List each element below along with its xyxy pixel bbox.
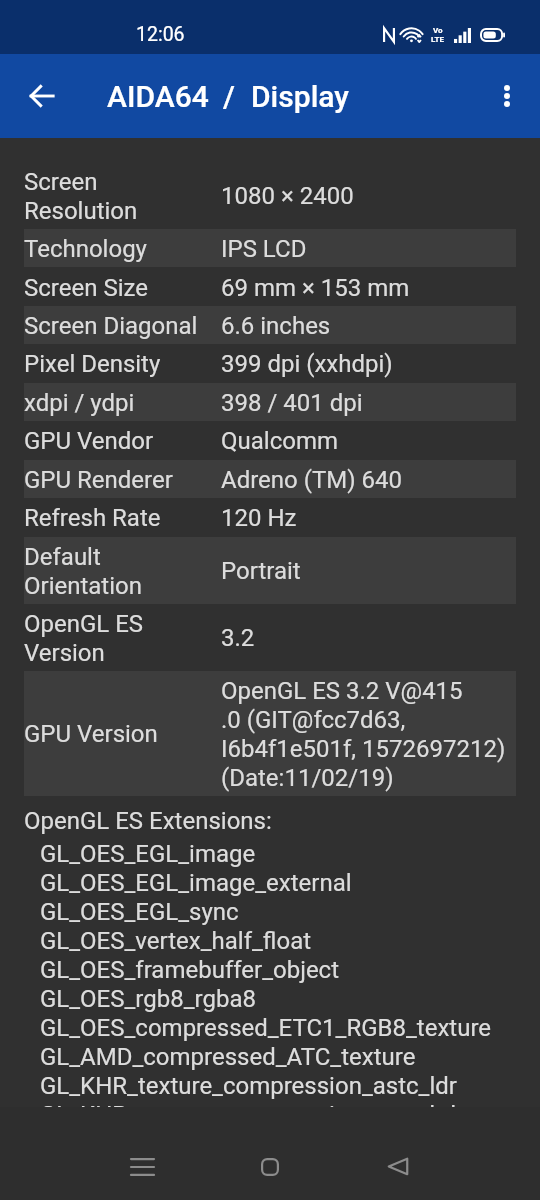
staticText: Vo (433, 26, 443, 35)
staticText: GPU Renderer (24, 465, 221, 494)
staticText: 120 Hz (221, 503, 297, 532)
staticText: Screen Size (24, 273, 221, 302)
button[interactable]: Recent apps (78, 1107, 206, 1200)
staticText: Screen Resolution (24, 167, 221, 225)
staticText: Display (251, 79, 349, 114)
staticText: Refresh Rate (24, 503, 221, 532)
staticText: OpenGL ES 3.2 V@415 .0 (GIT@fcc7d63, I6b… (221, 676, 506, 792)
staticText: AIDA64 (107, 79, 209, 114)
button[interactable]: Home (206, 1107, 334, 1200)
staticText: Screen Diagonal (24, 311, 221, 340)
button[interactable]: OpenGL ES Version (24, 604, 516, 671)
staticText: Portrait (221, 556, 301, 585)
button[interactable]: GPU Version (24, 671, 516, 796)
staticText: 12:06 (136, 23, 185, 46)
staticText: / (223, 79, 235, 114)
button[interactable]: GPU Renderer (24, 460, 516, 498)
staticText: Pixel Density (24, 349, 221, 378)
staticText: GPU Version (24, 719, 221, 748)
button[interactable]: Technology (24, 229, 516, 267)
staticText: GL_OES_EGL_image GL_OES_EGL_image_extern… (40, 839, 532, 1107)
staticText: GPU Vendor (24, 426, 221, 455)
staticText: Default Orientation (24, 542, 221, 600)
button[interactable]: xdpi / ydpi (24, 383, 516, 421)
staticText: 3.2 (221, 623, 255, 652)
staticText: 398 / 401 dpi (221, 388, 363, 417)
button[interactable]: GPU Vendor (24, 421, 516, 459)
button[interactable]: Refresh Rate (24, 498, 516, 536)
button[interactable]: Screen Diagonal (24, 306, 516, 344)
staticText: 399 dpi (xxhdpi) (221, 349, 393, 378)
staticText: OpenGL ES Version (24, 609, 221, 667)
staticText: Adreno (TM) 640 (221, 465, 402, 494)
staticText: LTE (431, 35, 444, 44)
button[interactable]: Navigate up (18, 72, 66, 120)
button[interactable]: More options (483, 72, 531, 120)
button[interactable]: Screen Resolution (24, 162, 516, 229)
button[interactable]: Pixel Density (24, 344, 516, 382)
button[interactable]: Back (334, 1107, 462, 1200)
staticText: Qualcomm (221, 426, 338, 455)
staticText: OpenGL ES Extensions: (24, 806, 516, 835)
staticText: xdpi / ydpi (24, 388, 221, 417)
staticText: 69 mm × 153 mm (221, 273, 410, 302)
staticText: IPS LCD (221, 234, 307, 263)
staticText: 6.6 inches (221, 311, 331, 340)
button[interactable]: Screen Size (24, 268, 516, 306)
staticText: Technology (24, 234, 221, 263)
button[interactable]: Default Orientation (24, 537, 516, 604)
staticText: 1080 × 2400 (221, 181, 354, 210)
